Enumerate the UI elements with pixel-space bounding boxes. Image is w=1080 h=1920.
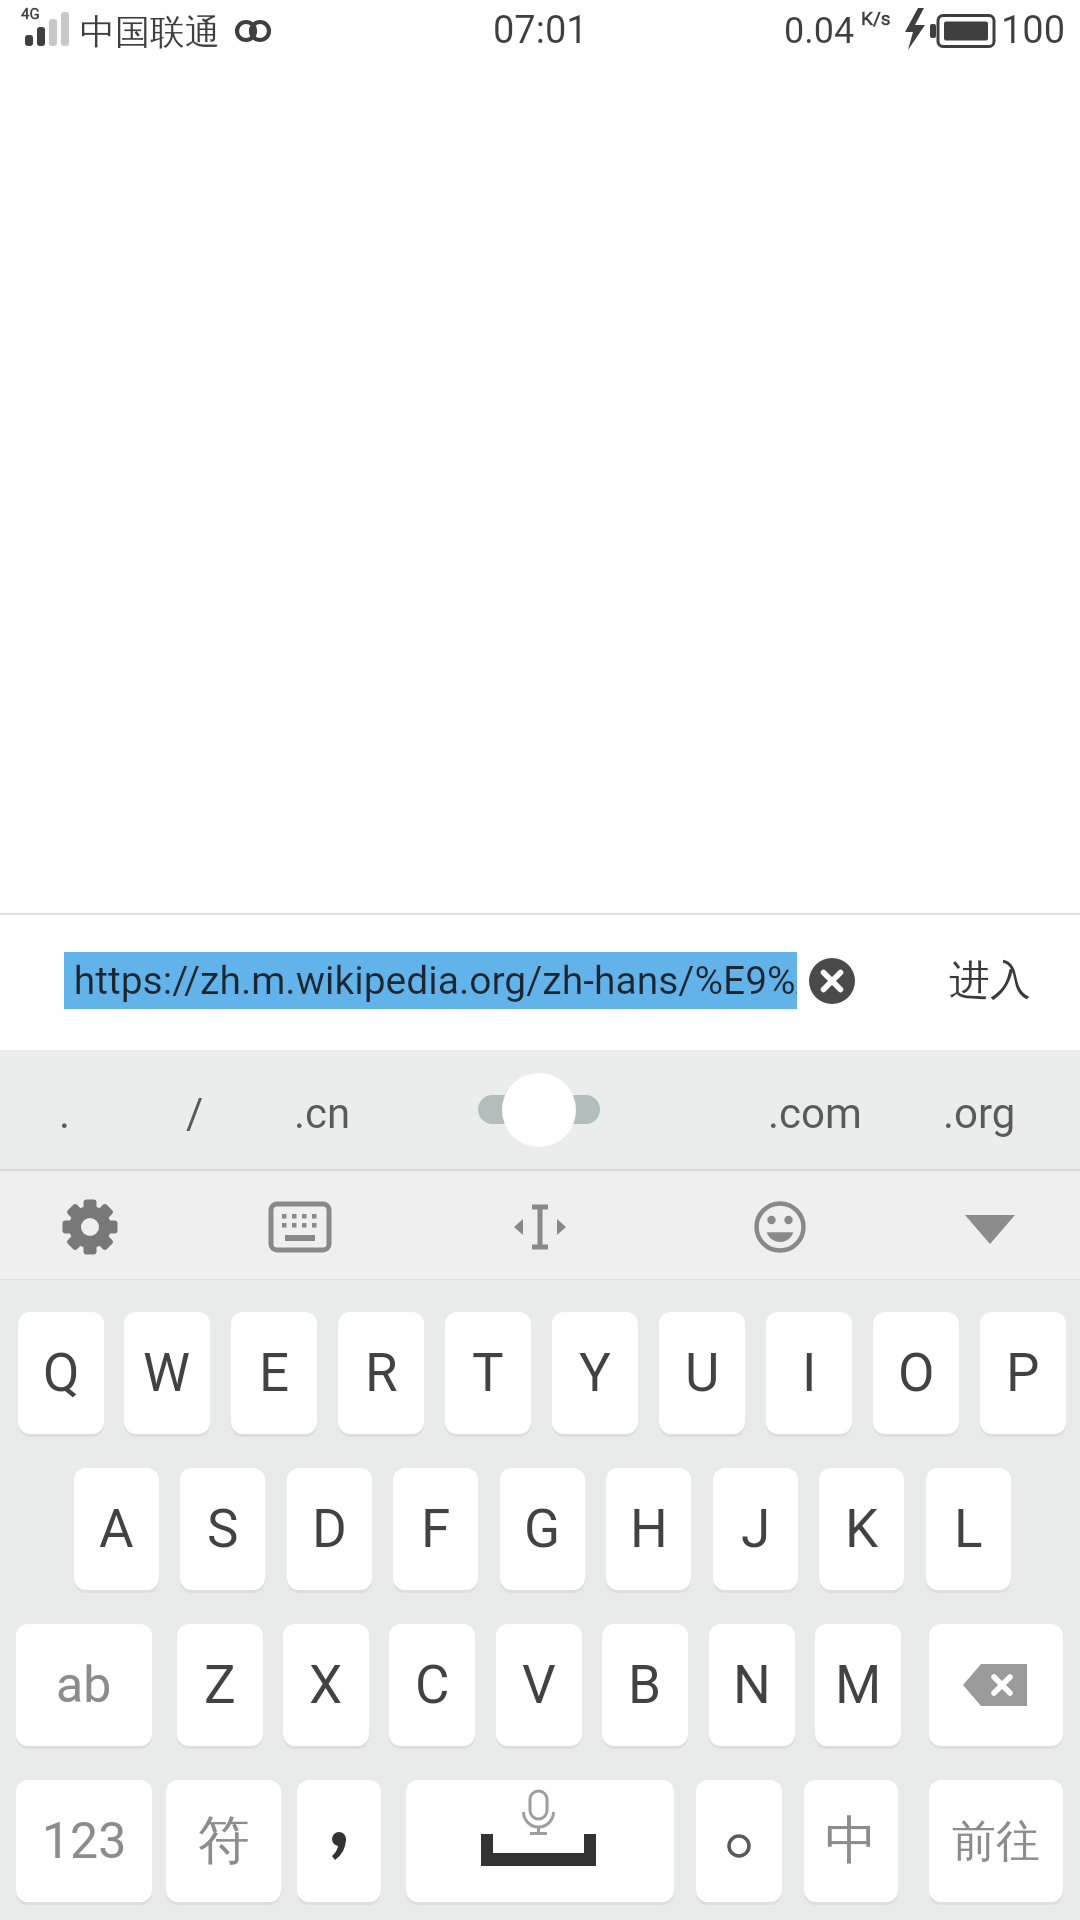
button[interactable]: F bbox=[393, 1468, 478, 1590]
staticText: / bbox=[186, 1089, 204, 1138]
staticText: 123 bbox=[42, 1812, 127, 1871]
button[interactable]: H bbox=[606, 1468, 691, 1590]
staticText: A bbox=[99, 1498, 134, 1560]
button[interactable]: 进入 bbox=[930, 952, 1050, 1010]
button[interactable]: V bbox=[496, 1624, 582, 1746]
staticText: U bbox=[685, 1342, 720, 1404]
button[interactable]: .org bbox=[909, 1058, 1049, 1168]
button[interactable]: / bbox=[125, 1058, 265, 1168]
staticText: K/s bbox=[861, 7, 891, 29]
staticText: ab bbox=[56, 1656, 112, 1715]
staticText: 符 bbox=[198, 1808, 250, 1874]
staticText: 进入 bbox=[949, 955, 1031, 1007]
staticText: https://zh.m.wikipedia.org/zh-hans/%E9%A bbox=[64, 958, 797, 1004]
staticText: B bbox=[628, 1654, 662, 1716]
staticText: K bbox=[845, 1498, 879, 1560]
staticText: .cn bbox=[294, 1089, 351, 1138]
button[interactable]: L bbox=[926, 1468, 1011, 1590]
staticText: X bbox=[309, 1654, 343, 1716]
button[interactable]: 前往 bbox=[929, 1780, 1063, 1902]
staticText: 0.04 bbox=[784, 10, 855, 50]
staticText: J bbox=[741, 1498, 771, 1560]
staticText: H bbox=[630, 1498, 668, 1560]
button[interactable]: C bbox=[389, 1624, 475, 1746]
button[interactable]: I bbox=[766, 1312, 852, 1434]
staticText: L bbox=[954, 1498, 983, 1560]
button[interactable]: U bbox=[659, 1312, 745, 1434]
button[interactable]: 中 bbox=[804, 1780, 898, 1902]
button[interactable]: ab bbox=[16, 1624, 152, 1746]
button[interactable] bbox=[696, 1780, 782, 1902]
button[interactable] bbox=[255, 1182, 345, 1272]
button[interactable]: P bbox=[980, 1312, 1066, 1434]
button[interactable]: W bbox=[124, 1312, 210, 1434]
staticText: . bbox=[59, 1089, 71, 1138]
button[interactable] bbox=[809, 958, 855, 1004]
button[interactable] bbox=[735, 1182, 825, 1272]
button[interactable]: X bbox=[283, 1624, 369, 1746]
staticText: Z bbox=[204, 1654, 236, 1716]
staticText: Y bbox=[579, 1342, 611, 1404]
button[interactable] bbox=[502, 1073, 576, 1147]
button[interactable]: . bbox=[0, 1058, 135, 1168]
staticText: T bbox=[472, 1342, 504, 1404]
staticText: F bbox=[421, 1498, 451, 1560]
button[interactable] bbox=[478, 1095, 600, 1124]
button[interactable] bbox=[45, 1182, 135, 1272]
button[interactable]: E bbox=[231, 1312, 317, 1434]
button[interactable]: J bbox=[713, 1468, 798, 1590]
staticText: M bbox=[835, 1654, 882, 1716]
staticText: V bbox=[522, 1654, 556, 1716]
staticText: I bbox=[802, 1342, 817, 1404]
staticText: 100 bbox=[1001, 8, 1066, 52]
staticText: Q bbox=[43, 1342, 80, 1404]
staticText: W bbox=[143, 1342, 191, 1404]
button[interactable]: 符 bbox=[166, 1780, 281, 1902]
staticText: N bbox=[733, 1654, 771, 1716]
staticText: 07:01 bbox=[493, 8, 588, 52]
staticText: E bbox=[259, 1342, 290, 1404]
staticText: 中 bbox=[825, 1808, 877, 1874]
staticText: .org bbox=[943, 1089, 1016, 1138]
staticText: 前往 bbox=[952, 1814, 1040, 1869]
button[interactable]: N bbox=[709, 1624, 795, 1746]
button[interactable]: Z bbox=[177, 1624, 263, 1746]
staticText: D bbox=[312, 1498, 347, 1560]
button[interactable]: R bbox=[338, 1312, 424, 1434]
button[interactable]: D bbox=[287, 1468, 372, 1590]
button[interactable]: 123 bbox=[16, 1780, 152, 1902]
button[interactable]: O bbox=[873, 1312, 959, 1434]
button[interactable]: K bbox=[819, 1468, 904, 1590]
button[interactable] bbox=[406, 1780, 674, 1902]
button[interactable]: S bbox=[180, 1468, 265, 1590]
staticText: G bbox=[524, 1498, 561, 1560]
button[interactable]: .cn bbox=[252, 1058, 392, 1168]
button[interactable] bbox=[929, 1624, 1063, 1746]
staticText: .com bbox=[768, 1089, 862, 1138]
button[interactable]: G bbox=[500, 1468, 585, 1590]
staticText: S bbox=[207, 1498, 239, 1560]
staticText: P bbox=[1006, 1342, 1040, 1404]
staticText: R bbox=[365, 1342, 398, 1404]
button[interactable]: A bbox=[74, 1468, 159, 1590]
staticText: 中国联通 bbox=[80, 10, 220, 50]
staticText: 4G bbox=[21, 5, 40, 23]
button[interactable] bbox=[495, 1182, 585, 1272]
staticText: C bbox=[415, 1654, 450, 1716]
button[interactable]: .com bbox=[745, 1058, 885, 1168]
button[interactable]: Q bbox=[18, 1312, 104, 1434]
staticText: O bbox=[898, 1342, 935, 1404]
button[interactable]: B bbox=[602, 1624, 688, 1746]
button[interactable]: T bbox=[445, 1312, 531, 1434]
button[interactable] bbox=[945, 1182, 1035, 1272]
button[interactable]: M bbox=[815, 1624, 901, 1746]
button[interactable]: Y bbox=[552, 1312, 638, 1434]
button[interactable] bbox=[297, 1780, 381, 1902]
